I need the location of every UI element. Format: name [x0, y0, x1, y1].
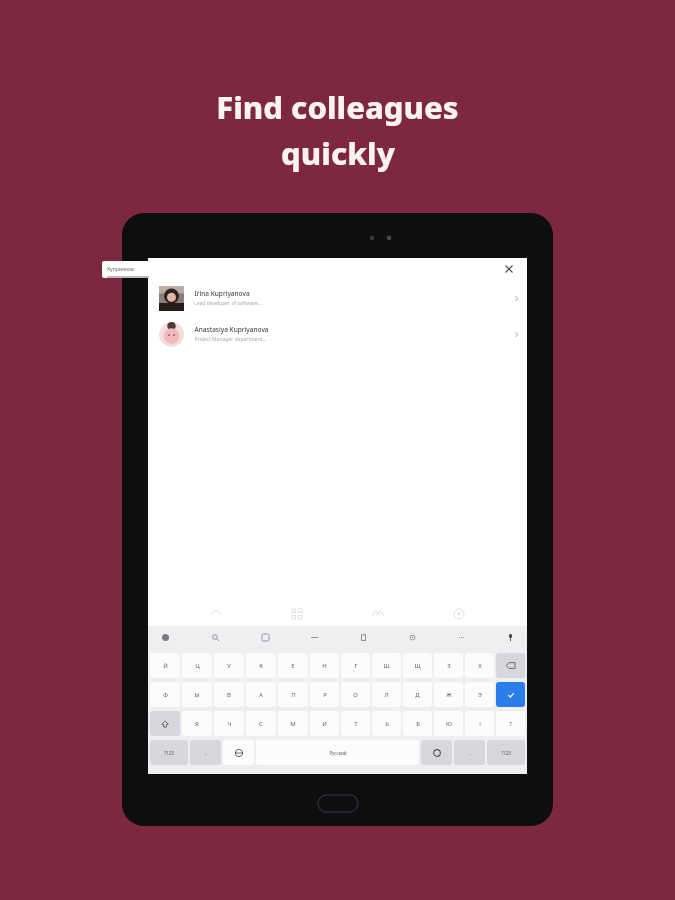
staticText: Р — [323, 691, 327, 699]
button[interactable]: Й — [150, 653, 180, 678]
staticText: ?123 — [501, 750, 511, 756]
button[interactable]: back — [496, 653, 525, 678]
staticText: ` — [305, 654, 306, 659]
staticText: quickly — [281, 132, 395, 174]
button[interactable]: Д — [403, 682, 432, 707]
button[interactable]: П — [278, 682, 308, 707]
staticText: Lead developer of software... — [194, 300, 262, 307]
button[interactable]: enter — [496, 682, 525, 707]
staticText: И — [322, 720, 327, 728]
button[interactable]: Keyboard tool 1 — [208, 630, 222, 644]
staticText: ` — [429, 654, 430, 659]
staticText: Irina Kupriyanova — [194, 289, 250, 298]
staticText: ` — [491, 654, 492, 659]
button[interactable]: Keyboard tool 4 — [356, 630, 370, 644]
staticText: ? — [509, 720, 512, 728]
button[interactable]: И — [310, 711, 339, 736]
button[interactable]: Я — [182, 711, 212, 736]
button[interactable]: Б — [403, 711, 432, 736]
button[interactable]: Р — [310, 682, 339, 707]
staticText: С — [259, 720, 263, 728]
button[interactable]: Keyboard tool 5 — [405, 630, 419, 644]
staticText: Э — [478, 691, 482, 699]
staticText: . — [469, 749, 471, 757]
staticText: ` — [367, 654, 368, 659]
button[interactable]: globe — [223, 740, 254, 765]
button[interactable]: Anastasiya Kupriyanova — [148, 316, 527, 352]
button[interactable]: Keyboard tool 0 — [158, 630, 172, 644]
button[interactable]: О — [341, 682, 370, 707]
staticText: Ц — [195, 662, 200, 670]
button[interactable]: Keyboard tool 2 — [258, 630, 272, 644]
button[interactable]: Contacts — [368, 604, 388, 624]
staticText: Б — [416, 720, 420, 728]
button[interactable]: Keyboard tool 7 — [503, 630, 517, 644]
staticText: Е — [291, 662, 295, 670]
button[interactable]: ! — [465, 711, 494, 736]
button[interactable]: Г — [341, 653, 370, 678]
button[interactable]: Щ — [403, 653, 432, 678]
button[interactable]: gear — [421, 740, 452, 765]
staticText: Ю — [446, 720, 452, 728]
staticText: Т — [354, 720, 358, 728]
staticText: ` — [273, 654, 274, 659]
button[interactable]: Keyboard tool 3 — [307, 630, 321, 644]
button[interactable]: Apps — [287, 604, 307, 624]
staticText: Русский — [329, 750, 347, 756]
staticText: А — [259, 691, 263, 699]
staticText: М — [290, 720, 296, 728]
button[interactable]: К — [246, 653, 276, 678]
button[interactable]: ?123 — [487, 740, 525, 765]
button[interactable]: Н — [310, 653, 339, 678]
button[interactable]: Ж — [434, 682, 463, 707]
button[interactable]: Profile — [449, 604, 469, 624]
button[interactable]: Е — [278, 653, 308, 678]
staticText: Н — [322, 662, 327, 670]
button[interactable]: Русский — [256, 740, 419, 765]
button[interactable]: Х — [465, 653, 494, 678]
staticText: Anastasiya Kupriyanova — [194, 325, 269, 334]
staticText: ` — [398, 654, 399, 659]
button[interactable]: Ц — [182, 653, 212, 678]
button[interactable]: shift — [150, 711, 180, 736]
staticText: ` — [460, 654, 461, 659]
button[interactable]: Куприянов — [102, 261, 154, 278]
button[interactable]: Close — [501, 261, 517, 277]
staticText: Л — [384, 691, 389, 699]
staticText: Ы — [194, 691, 200, 699]
button[interactable]: Ш — [372, 653, 401, 678]
button[interactable]: А — [246, 682, 276, 707]
button[interactable]: Chats — [206, 604, 226, 624]
staticText: ! — [479, 720, 481, 728]
button[interactable]: Т — [341, 711, 370, 736]
staticText: ` — [177, 654, 178, 659]
button[interactable]: У — [214, 653, 244, 678]
button[interactable]: Keyboard tool 6 — [454, 630, 468, 644]
staticText: Г — [354, 662, 358, 670]
button[interactable]: Ф — [150, 682, 180, 707]
button[interactable]: ?123 — [150, 740, 188, 765]
button[interactable]: Home — [318, 795, 358, 812]
staticText: З — [447, 662, 451, 670]
button[interactable]: С — [246, 711, 276, 736]
staticText: Х — [478, 662, 482, 670]
staticText: П — [291, 691, 296, 699]
button[interactable]: Э — [465, 682, 494, 707]
button[interactable]: Irina Kupriyanova — [148, 280, 527, 316]
staticText: ` — [241, 654, 242, 659]
staticText: Щ — [414, 662, 421, 670]
button[interactable]: Ч — [214, 711, 244, 736]
button[interactable]: М — [278, 711, 308, 736]
staticText: У — [227, 662, 231, 670]
button[interactable]: Ы — [182, 682, 212, 707]
button[interactable]: Ь — [372, 711, 401, 736]
staticText: Ч — [227, 720, 232, 728]
button[interactable]: В — [214, 682, 244, 707]
staticText: Ш — [383, 662, 390, 670]
button[interactable]: Л — [372, 682, 401, 707]
button[interactable]: ? — [496, 711, 525, 736]
button[interactable]: Ю — [434, 711, 463, 736]
button[interactable]: З — [434, 653, 463, 678]
